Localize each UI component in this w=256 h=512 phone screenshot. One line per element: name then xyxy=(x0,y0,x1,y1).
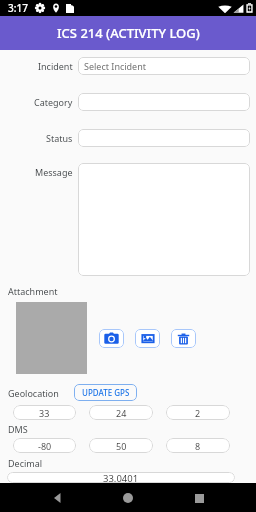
staticText: 33.0401 xyxy=(103,472,139,483)
staticText: 3:17 xyxy=(8,1,28,15)
staticText: Message xyxy=(35,166,73,178)
button[interactable]: 33 xyxy=(13,405,76,420)
staticText: 8 xyxy=(195,440,201,452)
staticText: Status xyxy=(46,132,73,144)
button[interactable]: Home xyxy=(115,485,141,511)
staticText: Geolocation xyxy=(8,387,59,399)
button[interactable]: Take photo xyxy=(99,329,124,348)
staticText: 50 xyxy=(116,440,127,452)
staticText: Category xyxy=(34,96,73,108)
button[interactable]: UPDATE GPS xyxy=(74,384,137,401)
staticText: Select Incident xyxy=(84,60,147,72)
button[interactable]: 24 xyxy=(89,405,153,420)
button[interactable]: Recents xyxy=(186,485,212,511)
button[interactable]: 8 xyxy=(166,438,230,453)
staticText: 24 xyxy=(116,407,127,419)
button[interactable] xyxy=(78,93,250,111)
button[interactable] xyxy=(78,129,250,147)
staticText: -80 xyxy=(38,440,52,452)
staticText: Attachment xyxy=(8,285,58,297)
button[interactable]: 33.0401 xyxy=(7,472,235,483)
staticText: ICS 214 (ACTIVITY LOG) xyxy=(57,24,200,42)
staticText: 2 xyxy=(195,407,201,419)
button[interactable]: Pick image xyxy=(135,329,160,348)
staticText: DMS xyxy=(8,423,28,435)
button[interactable]: -80 xyxy=(13,438,76,453)
button[interactable]: 50 xyxy=(89,438,153,453)
staticText: Incident xyxy=(38,60,73,72)
button[interactable]: Back xyxy=(45,485,71,511)
button[interactable]: Delete xyxy=(171,329,196,348)
button[interactable]: 2 xyxy=(166,405,230,420)
staticText: UPDATE GPS xyxy=(82,387,130,398)
button[interactable] xyxy=(78,163,250,276)
staticText: 33 xyxy=(39,407,50,419)
staticText: Decimal xyxy=(8,457,43,469)
button[interactable]: Select Incident xyxy=(78,57,250,75)
